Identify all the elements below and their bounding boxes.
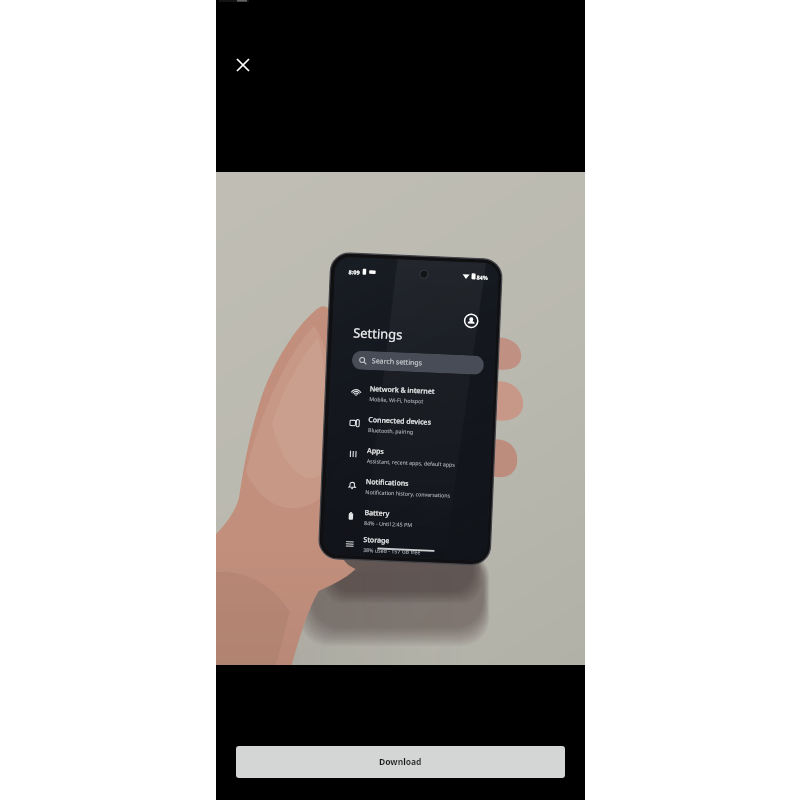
staticText: 38% used - 157 GB free xyxy=(363,546,421,555)
button[interactable]: Close xyxy=(223,45,263,85)
staticText: Download xyxy=(379,756,422,768)
staticText: Storage xyxy=(363,535,390,546)
staticText: 84% - Until 2:45 PM xyxy=(364,519,412,528)
staticText: Mobile, Wi-Fi, hotspot xyxy=(369,395,423,404)
button[interactable]: Apps xyxy=(347,438,481,475)
staticText: Assistant, recent apps, default apps xyxy=(367,457,456,468)
button[interactable]: Battery xyxy=(345,500,478,537)
staticText: Bluetooth, pairing xyxy=(368,426,414,435)
staticText: Connected devices xyxy=(368,415,432,428)
button[interactable]: Photo preview xyxy=(216,172,585,665)
staticText: Notifications xyxy=(366,477,409,489)
staticText: Network & internet xyxy=(369,384,435,397)
staticText: Search settings xyxy=(372,356,423,368)
button[interactable]: Search settings xyxy=(352,350,484,375)
staticText: 84% xyxy=(476,273,489,281)
button[interactable]: Connected devices xyxy=(349,407,482,444)
staticText: Apps xyxy=(367,446,384,457)
staticText: 8:09 xyxy=(348,268,360,276)
button[interactable]: Account xyxy=(463,313,479,329)
button[interactable]: Notifications xyxy=(346,469,479,506)
button[interactable]: Download xyxy=(236,746,565,778)
button[interactable]: Network & internet xyxy=(350,376,483,413)
staticText: Settings xyxy=(353,323,403,343)
staticText: Notification history, conversations xyxy=(365,488,450,499)
button[interactable]: Storage xyxy=(344,531,477,561)
staticText: Battery xyxy=(364,508,390,519)
